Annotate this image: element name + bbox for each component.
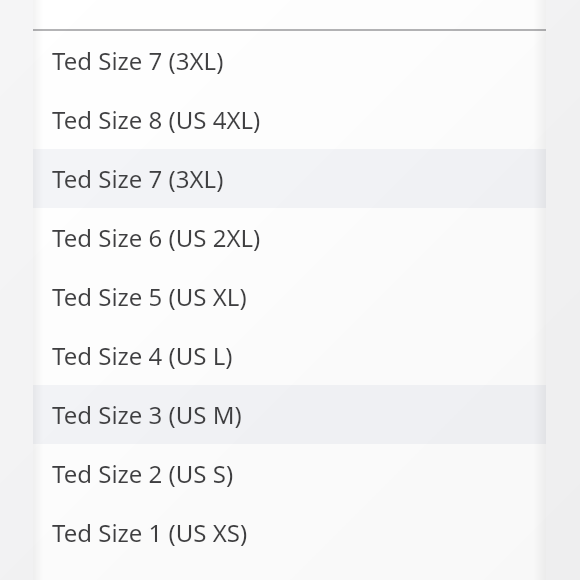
button[interactable]: Ted Size 6 (US 2XL) xyxy=(33,208,546,267)
staticText: Ted Size 3 (US M) xyxy=(52,398,242,431)
staticText: Ted Size 7 (3XL) xyxy=(52,44,224,77)
staticText: Ted Size 4 (US L) xyxy=(52,339,233,372)
staticText: Ted Size 5 (US XL) xyxy=(52,280,247,313)
button[interactable]: Ted Size 7 (3XL) xyxy=(33,149,546,208)
staticText: Ted Size 1 (US XS) xyxy=(52,516,248,549)
staticText: Ted Size 7 (3XL) xyxy=(52,162,224,195)
button[interactable]: Ted Size 7 (3XL) xyxy=(33,31,546,90)
button[interactable]: Ted Size 5 (US XL) xyxy=(33,267,546,326)
button[interactable]: Ted Size 8 (US 4XL) xyxy=(33,90,546,149)
button[interactable]: Ted Size 3 (US M) xyxy=(33,385,546,444)
staticText: Ted Size 6 (US 2XL) xyxy=(52,221,261,254)
button[interactable]: Ted Size 1 (US XS) xyxy=(33,503,546,562)
staticText: Ted Size 8 (US 4XL) xyxy=(52,103,261,136)
button[interactable]: Ted Size 2 (US S) xyxy=(33,444,546,503)
staticText: Ted Size 2 (US S) xyxy=(52,457,234,490)
button[interactable]: Ted Size 4 (US L) xyxy=(33,326,546,385)
